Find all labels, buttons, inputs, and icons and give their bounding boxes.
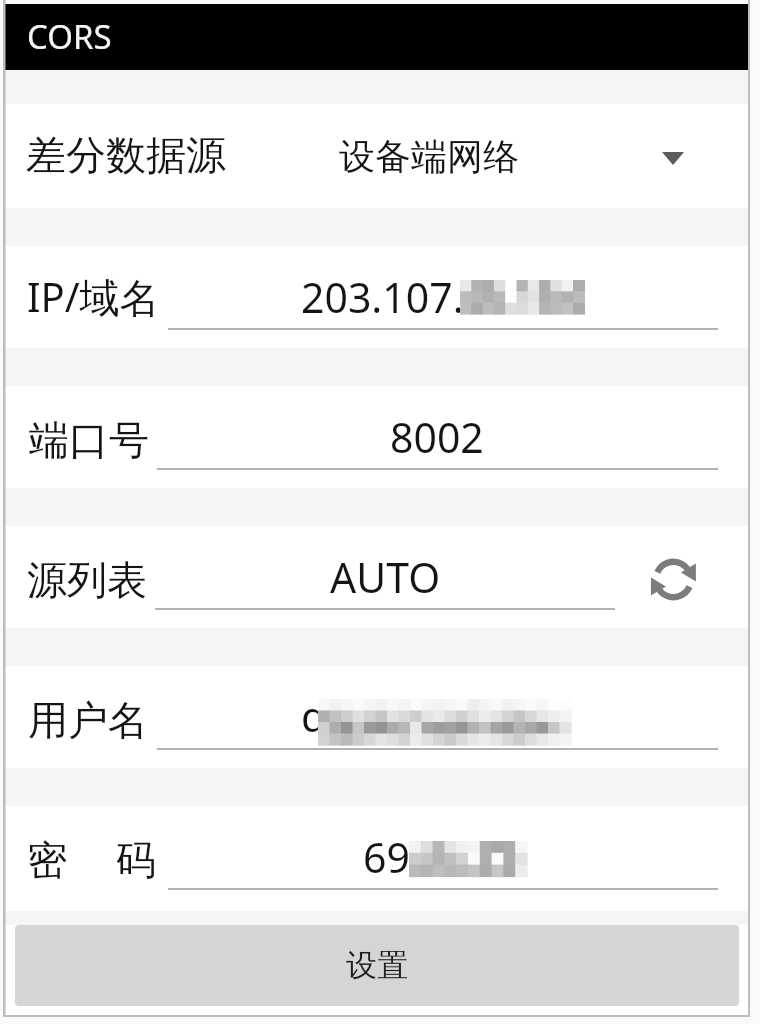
staticText: qxy20009014	[301, 688, 557, 744]
other: Refresh	[651, 556, 698, 603]
button[interactable]: 端口号	[5, 386, 749, 488]
button[interactable]: 用户名	[5, 666, 749, 768]
staticText: 密	[27, 835, 67, 885]
staticText: 设置	[346, 946, 408, 985]
button[interactable]: Refresh source list	[643, 548, 705, 610]
button[interactable]: 差分数据源	[5, 104, 749, 208]
staticText: CORS	[27, 14, 112, 59]
button[interactable]: 设置	[15, 925, 739, 1006]
staticText: AUTO	[330, 549, 441, 605]
staticText: IP/域名	[27, 269, 160, 324]
staticText: 端口号	[29, 415, 149, 465]
staticText: 码	[116, 835, 156, 885]
button[interactable]: 源列表	[5, 526, 749, 628]
staticText: 差分数据源	[26, 130, 226, 180]
staticText: 设备端网络	[339, 134, 519, 179]
staticText: 用户名	[28, 695, 148, 745]
button[interactable]: IP/域名	[5, 246, 749, 348]
button[interactable]: 密	[5, 806, 749, 908]
staticText: 69	[363, 829, 410, 885]
staticText: 8002	[390, 409, 484, 465]
button[interactable]: CORS	[5, 4, 749, 70]
staticText: 源列表	[27, 555, 147, 605]
staticText: 203.107.	[301, 269, 464, 325]
other: Open dropdown	[662, 152, 684, 165]
